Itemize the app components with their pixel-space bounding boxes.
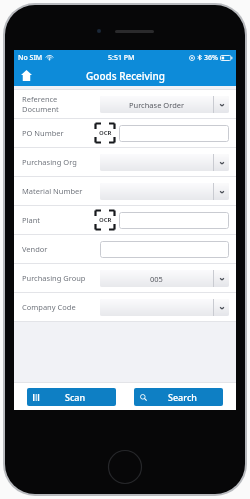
button[interactable]: 005 <box>100 270 229 287</box>
button[interactable]: Purchasing Org <box>14 148 236 176</box>
button[interactable]: Scan Plant with OCR <box>95 210 115 230</box>
button[interactable] <box>119 212 229 229</box>
staticText: Goods Receiving <box>86 69 165 83</box>
button[interactable] <box>119 125 229 142</box>
staticText: Company Code <box>22 302 95 312</box>
button[interactable] <box>100 183 229 200</box>
staticText: Vendor <box>22 244 95 254</box>
button[interactable]: Reference Document <box>14 90 236 118</box>
other: Search <box>140 394 147 401</box>
staticText: Search <box>168 391 197 403</box>
staticText: Scan <box>65 391 86 403</box>
staticText: Purchasing Org <box>22 157 95 167</box>
button[interactable]: Company Code <box>14 293 236 321</box>
staticText: Reference Document <box>22 94 95 114</box>
staticText: PO Number <box>22 128 95 138</box>
other: Scan <box>33 394 40 401</box>
button[interactable]: Scan PO Number with OCR <box>95 123 115 143</box>
staticText: OCR <box>99 216 112 224</box>
button[interactable]: Vendor <box>14 235 236 263</box>
button[interactable]: Material Number <box>14 177 236 205</box>
button[interactable] <box>100 299 229 316</box>
button[interactable] <box>100 154 229 171</box>
staticText: OCR <box>99 129 112 137</box>
staticText: Purchasing Group <box>22 273 95 283</box>
button[interactable] <box>100 241 229 258</box>
staticText: 005 <box>150 274 163 284</box>
button[interactable]: Purchase Order <box>100 96 229 113</box>
staticText: 5:51 PM <box>108 53 135 63</box>
staticText: Material Number <box>22 186 95 196</box>
staticText: Plant <box>22 215 95 225</box>
staticText: No SIM <box>18 53 43 63</box>
button[interactable]: Purchasing Group <box>14 264 236 292</box>
staticText: Purchase Order <box>129 100 185 110</box>
button[interactable]: Plant <box>14 206 236 234</box>
button[interactable]: PO Number <box>14 119 236 147</box>
button[interactable]: Home <box>18 67 35 84</box>
staticText: 36% <box>204 53 218 63</box>
button[interactable]: Search <box>134 388 223 406</box>
button[interactable]: Scan <box>27 388 116 406</box>
